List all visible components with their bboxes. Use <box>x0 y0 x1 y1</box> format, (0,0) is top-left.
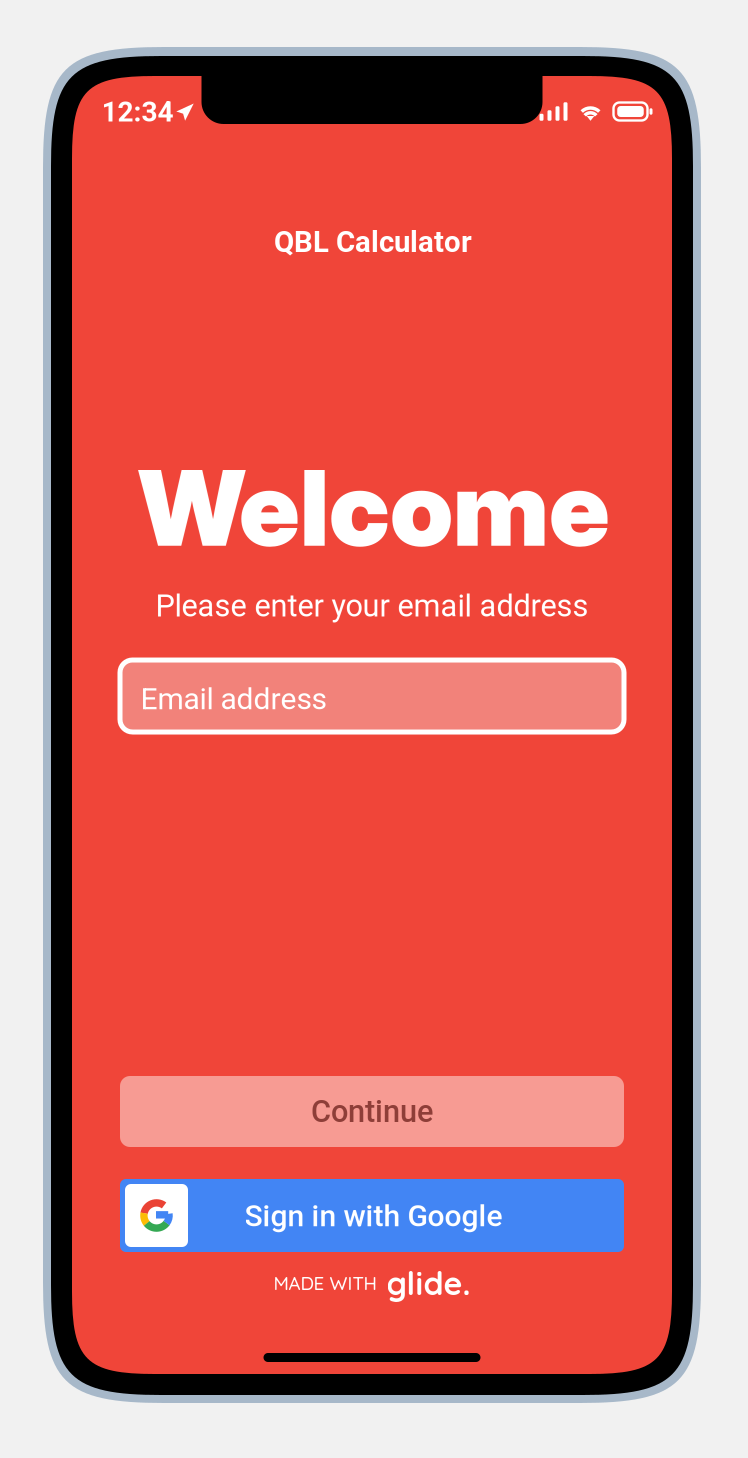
staticText: Welcome <box>138 445 610 571</box>
staticText: MADE WITH <box>273 1271 376 1295</box>
button[interactable]: Sign in with Google <box>120 1179 624 1252</box>
button[interactable]: Continue <box>120 1076 624 1147</box>
staticText: 12:34 <box>101 96 173 128</box>
staticText: Continue <box>311 1093 433 1129</box>
staticText: Please enter your email address <box>155 588 588 624</box>
staticText: glide. <box>386 1263 470 1303</box>
staticText: Sign in with Google <box>244 1198 502 1234</box>
staticText: Email address <box>140 681 326 717</box>
staticText: QBL Calculator <box>274 225 472 259</box>
